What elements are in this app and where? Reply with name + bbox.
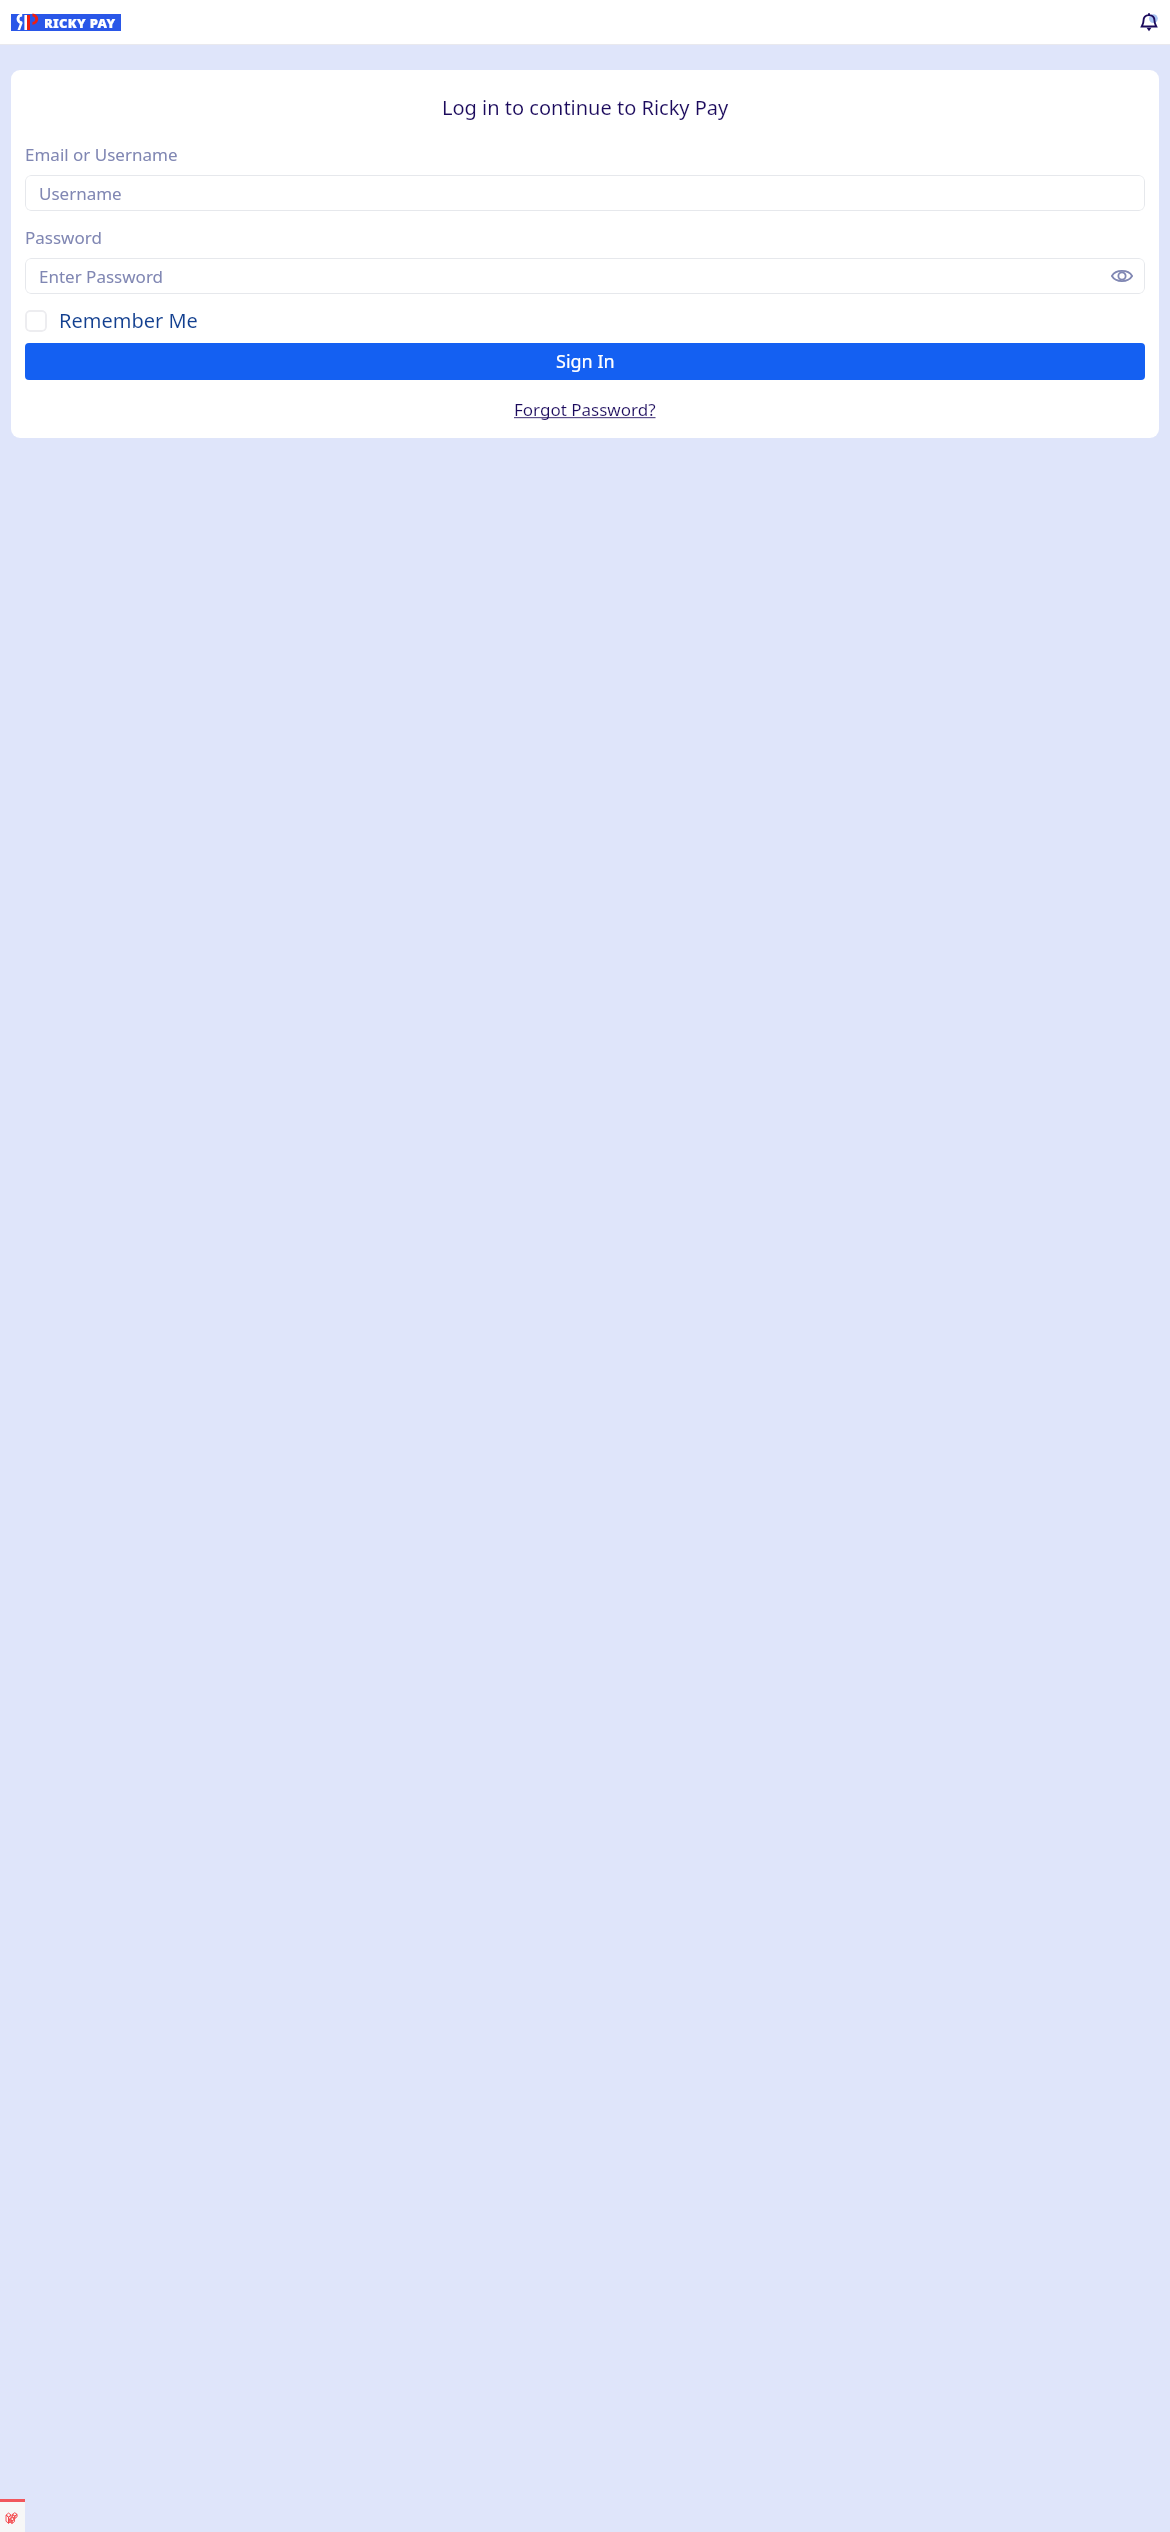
button[interactable]: Enter Password [25,258,1145,294]
button[interactable]: Laravel Debugbar [0,2499,25,2532]
button[interactable]: RICKY PAY [11,14,121,31]
staticText: Log in to continue to Ricky Pay [442,94,729,121]
button[interactable]: Username [25,175,1145,211]
other: Laravel Debugbar [4,2509,22,2527]
button[interactable]: Forgot Password? [514,398,656,421]
staticText: Enter Password [39,265,164,288]
button[interactable]: Remember Me [25,307,1145,334]
staticText: Password [25,226,102,249]
button[interactable]: Notifications [1137,11,1161,35]
button[interactable]: Show password [1109,263,1135,289]
staticText: Email or Username [25,143,178,166]
staticText: Remember Me [59,307,198,334]
staticText: Username [39,182,122,205]
staticText: RICKY PAY [44,14,116,31]
staticText: Sign In [556,349,615,374]
button[interactable]: Sign In [25,343,1145,380]
